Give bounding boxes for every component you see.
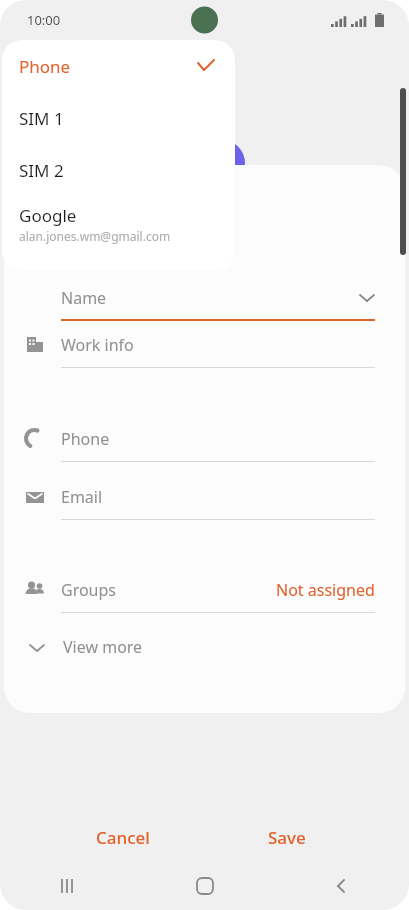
button[interactable]: Save: [205, 815, 369, 859]
staticText: View more: [63, 636, 143, 658]
button[interactable]: SIM 2: [2, 144, 235, 196]
button[interactable]: Recents: [38, 862, 98, 910]
staticText: Phone: [61, 428, 110, 450]
staticText: Save: [268, 826, 306, 849]
staticText: Work info: [61, 334, 134, 356]
button[interactable]: Google: [2, 196, 235, 256]
button[interactable]: Email: [4, 474, 405, 520]
button[interactable]: Home: [175, 862, 235, 910]
button[interactable]: Phone: [4, 416, 405, 462]
staticText: 10:00: [27, 11, 61, 29]
staticText: Cancel: [96, 826, 150, 849]
button[interactable]: Back: [311, 862, 371, 910]
staticText: Phone: [19, 55, 71, 78]
button[interactable]: Groups: [4, 567, 405, 613]
staticText: Name: [61, 287, 107, 309]
staticText: Groups: [61, 579, 117, 601]
staticText: Google: [19, 204, 77, 227]
button[interactable]: Name: [4, 275, 405, 321]
button[interactable]: View more: [4, 627, 405, 667]
staticText: SIM 2: [19, 159, 64, 182]
button[interactable]: Cancel: [41, 815, 205, 859]
staticText: SIM 1: [19, 107, 64, 130]
button[interactable]: Work info: [4, 322, 405, 368]
staticText: alan.jones.wm@gmail.com: [19, 228, 171, 244]
button[interactable]: Phone: [2, 40, 235, 92]
staticText: Email: [61, 486, 103, 508]
staticText: Not assigned: [276, 579, 375, 601]
button[interactable]: SIM 1: [2, 92, 235, 144]
